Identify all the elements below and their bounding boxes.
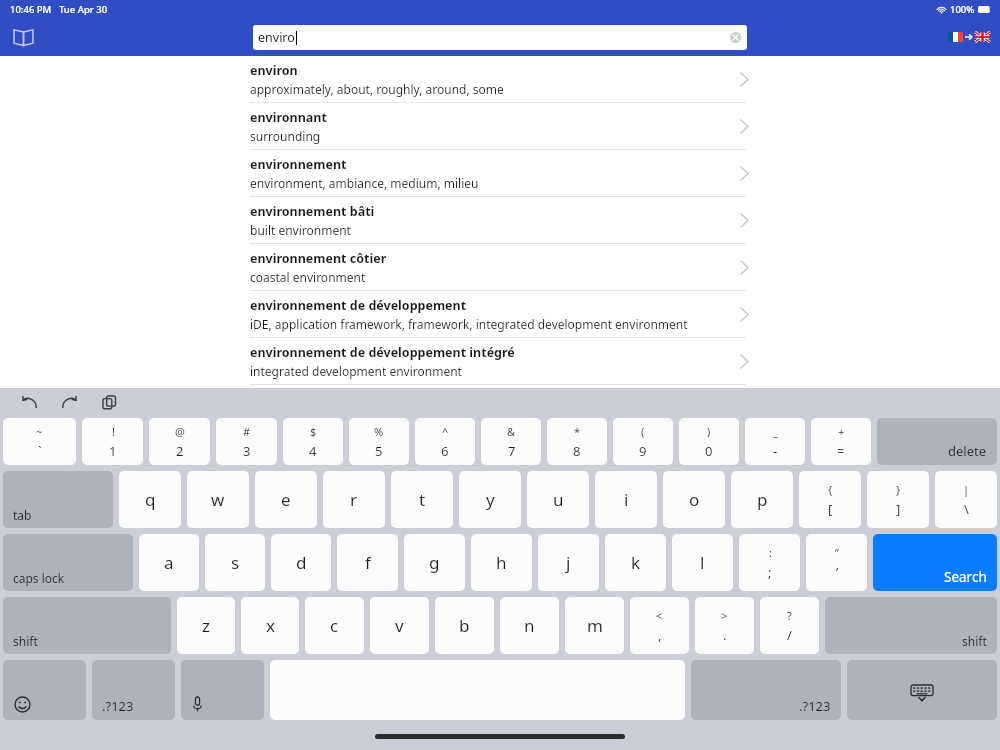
staticText: delete: [948, 442, 987, 460]
button[interactable]: >: [695, 597, 754, 654]
button[interactable]: k: [605, 534, 666, 591]
button[interactable]: j: [538, 534, 599, 591]
button[interactable]: ~: [3, 418, 76, 465]
button[interactable]: .?123: [92, 660, 175, 720]
staticText: caps lock: [13, 570, 65, 586]
staticText: n: [524, 614, 535, 637]
button[interactable]: delete: [877, 418, 997, 465]
button[interactable]: r: [323, 471, 385, 528]
staticText: v: [395, 614, 404, 637]
button[interactable]: *: [547, 418, 607, 465]
button[interactable]: }: [867, 471, 929, 528]
staticText: d: [296, 551, 307, 574]
button[interactable]: environnement: [0, 150, 1000, 197]
button[interactable]: _: [745, 418, 805, 465]
staticText: e: [281, 488, 291, 511]
button[interactable]: Dictionary: [6, 20, 40, 54]
button[interactable]: l: [672, 534, 733, 591]
button[interactable]: @: [149, 418, 210, 465]
staticText: tab: [13, 507, 32, 523]
button[interactable]: h: [471, 534, 532, 591]
button[interactable]: Undo: [16, 389, 42, 415]
button[interactable]: &: [481, 418, 541, 465]
button[interactable]: (: [613, 418, 673, 465]
button[interactable]: :: [739, 534, 800, 591]
button[interactable]: !: [82, 418, 143, 465]
button[interactable]: y: [459, 471, 521, 528]
button[interactable]: .?123: [691, 660, 841, 720]
button[interactable]: environnement de développement: [0, 291, 1000, 338]
staticText: ): [707, 424, 711, 439]
button[interactable]: o: [663, 471, 725, 528]
button[interactable]: t: [391, 471, 453, 528]
button[interactable]: $: [283, 418, 343, 465]
button[interactable]: d: [271, 534, 331, 591]
button[interactable]: shift: [3, 597, 171, 654]
staticText: =: [837, 442, 845, 460]
button[interactable]: Search: [873, 534, 997, 591]
button[interactable]: i: [595, 471, 657, 528]
button[interactable]: f: [337, 534, 398, 591]
button[interactable]: Emoji: [3, 660, 86, 720]
button[interactable]: x: [241, 597, 299, 654]
staticText: 10:46 PM: [10, 3, 52, 16]
staticText: environnement côtier: [250, 250, 387, 267]
button[interactable]: {: [799, 471, 861, 528]
button[interactable]: p: [731, 471, 793, 528]
button[interactable]: b: [435, 597, 494, 654]
staticText: 8: [573, 442, 581, 460]
button[interactable]: v: [370, 597, 429, 654]
button[interactable]: enviro: [253, 25, 747, 50]
button[interactable]: |: [935, 471, 997, 528]
button[interactable]: s: [205, 534, 265, 591]
other: Dictation: [193, 697, 202, 712]
staticText: ~: [36, 424, 43, 439]
button[interactable]: ?: [760, 597, 819, 654]
button[interactable]: caps lock: [3, 534, 133, 591]
button[interactable]: Dictation: [181, 660, 264, 720]
button[interactable]: u: [527, 471, 589, 528]
staticText: [: [828, 500, 833, 518]
button[interactable]: Paste: [96, 389, 122, 415]
other: Emoji: [15, 697, 30, 712]
staticText: {: [828, 482, 833, 497]
button[interactable]: environnement côtier: [0, 244, 1000, 291]
staticText: Search: [944, 568, 987, 586]
button[interactable]: French to English: [948, 32, 990, 42]
button[interactable]: ^: [415, 418, 475, 465]
button[interactable]: shift: [825, 597, 997, 654]
button[interactable]: z: [177, 597, 235, 654]
staticText: a: [164, 551, 174, 574]
staticText: u: [553, 488, 564, 511]
button[interactable]: n: [500, 597, 559, 654]
button[interactable]: tab: [3, 471, 113, 528]
button[interactable]: w: [187, 471, 249, 528]
button[interactable]: %: [349, 418, 409, 465]
button[interactable]: environnement de développement intégré: [0, 338, 1000, 385]
button[interactable]: c: [305, 597, 364, 654]
button[interactable]: a: [139, 534, 199, 591]
staticText: ’: [836, 563, 839, 581]
button[interactable]: environnement bâti: [0, 197, 1000, 244]
button[interactable]: Hide keyboard: [847, 660, 997, 720]
staticText: 9: [639, 442, 647, 460]
button[interactable]: ”: [806, 534, 867, 591]
button[interactable]: #: [216, 418, 277, 465]
button[interactable]: q: [119, 471, 181, 528]
staticText: 5: [375, 442, 383, 460]
staticText: f: [365, 551, 371, 574]
staticText: +: [838, 424, 845, 439]
button[interactable]: ): [679, 418, 739, 465]
staticText: i: [624, 488, 629, 511]
button[interactable]: environnant: [0, 103, 1000, 150]
staticText: x: [266, 614, 275, 637]
button[interactable]: e: [255, 471, 317, 528]
button[interactable]: <: [630, 597, 689, 654]
staticText: 4: [309, 442, 317, 460]
button[interactable]: m: [565, 597, 624, 654]
button[interactable]: g: [404, 534, 465, 591]
button[interactable]: +: [811, 418, 871, 465]
button[interactable]: environ: [0, 56, 1000, 103]
button[interactable]: Redo: [56, 389, 82, 415]
